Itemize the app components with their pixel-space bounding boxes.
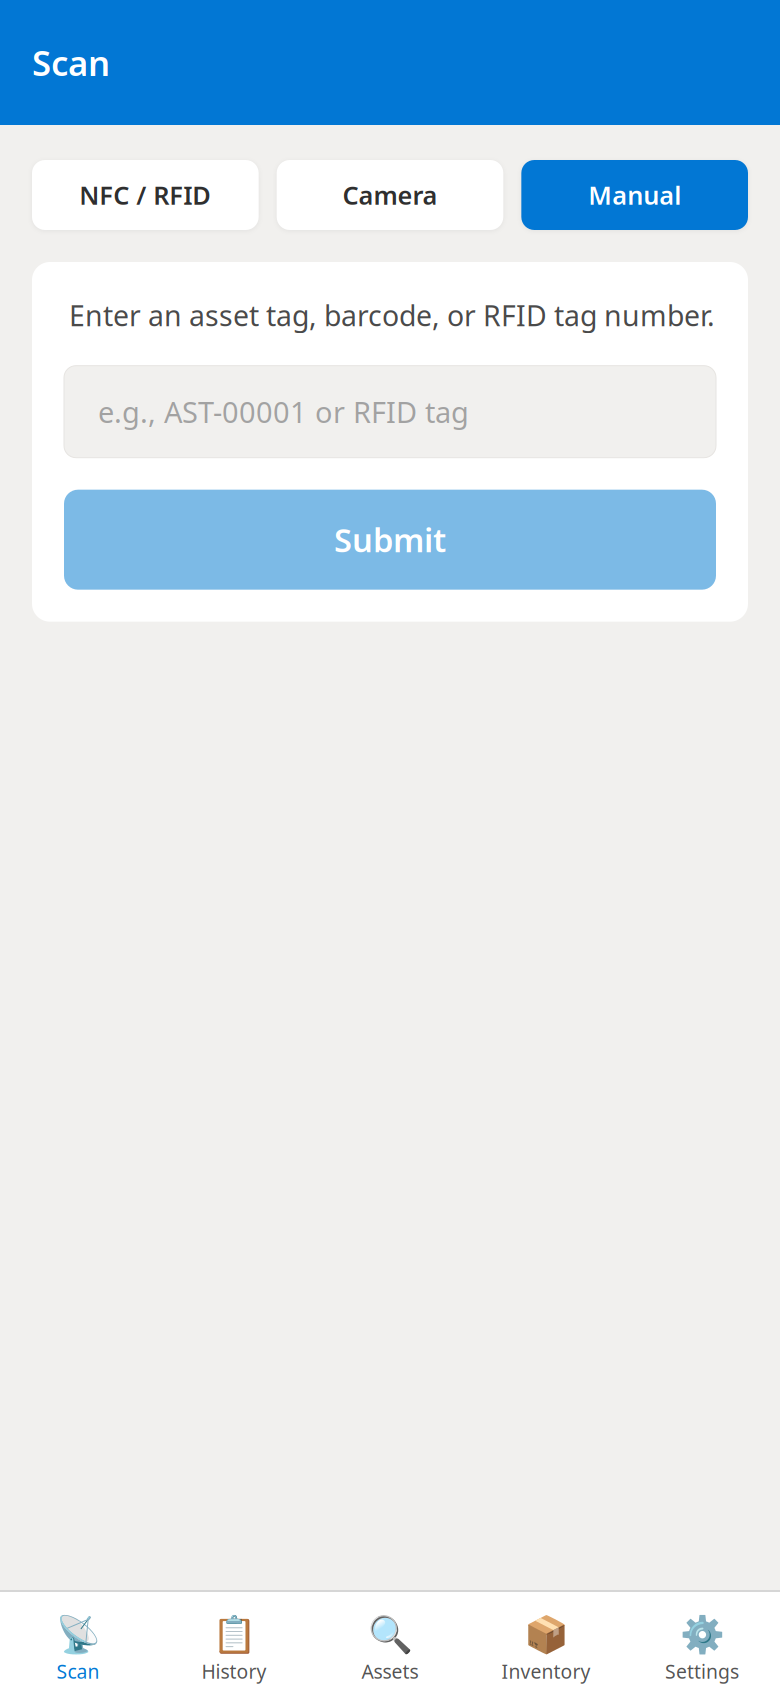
staticText: ⚙️ bbox=[679, 1614, 724, 1656]
button[interactable]: 📦 bbox=[468, 1614, 624, 1684]
button[interactable]: 📡 bbox=[0, 1614, 156, 1684]
staticText: Camera bbox=[342, 178, 437, 212]
staticText: 🔍 bbox=[367, 1614, 412, 1656]
staticText: Scan bbox=[56, 1658, 99, 1684]
button[interactable]: 🔍 bbox=[312, 1614, 468, 1684]
staticText: NFC / RFID bbox=[79, 178, 211, 212]
button[interactable]: Submit bbox=[64, 490, 716, 590]
staticText: Scan bbox=[32, 39, 110, 86]
staticText: Enter an asset tag, barcode, or RFID tag… bbox=[69, 296, 715, 335]
button[interactable]: NFC / RFID bbox=[32, 160, 259, 230]
button[interactable]: ⚙️ bbox=[624, 1614, 780, 1684]
button[interactable]: 📋 bbox=[156, 1614, 312, 1684]
staticText: 📡 bbox=[55, 1614, 100, 1656]
staticText: Manual bbox=[588, 178, 681, 212]
staticText: Assets bbox=[361, 1658, 418, 1684]
staticText: Settings bbox=[665, 1658, 739, 1684]
staticText: History bbox=[201, 1658, 266, 1684]
staticText: 📋 bbox=[211, 1614, 256, 1656]
button[interactable]: Camera bbox=[277, 160, 503, 230]
button[interactable]: Manual bbox=[521, 160, 748, 230]
staticText: Inventory bbox=[501, 1658, 590, 1684]
staticText: Submit bbox=[334, 517, 446, 562]
staticText: 📦 bbox=[523, 1614, 568, 1656]
staticText: e.g., AST-00001 or RFID tag bbox=[98, 392, 469, 431]
